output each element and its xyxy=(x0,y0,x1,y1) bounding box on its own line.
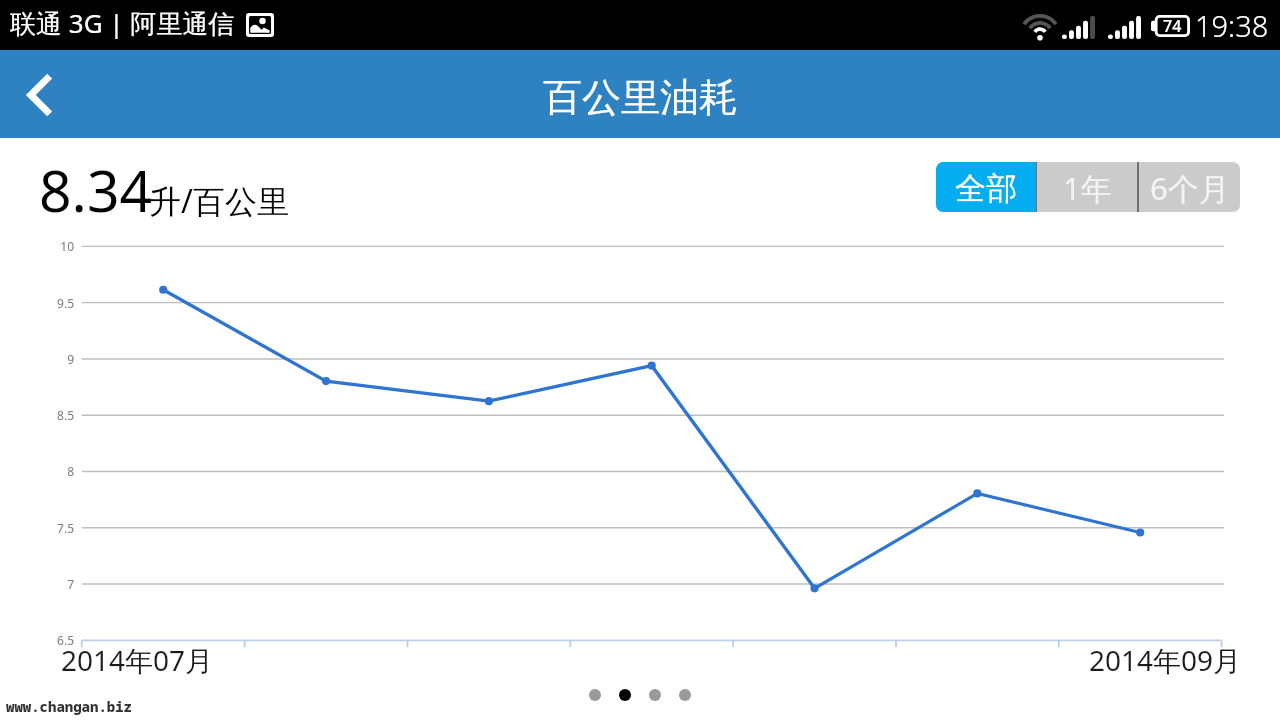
staticText: 6个月 xyxy=(1150,167,1230,209)
staticText: 1年 xyxy=(1063,167,1112,209)
button[interactable]: 6个月 xyxy=(1139,162,1240,212)
staticText: 2014年09月 xyxy=(1089,641,1242,679)
staticText: 7.5 xyxy=(57,520,74,536)
staticText: 联通 3G | 阿里通信 xyxy=(10,5,235,41)
staticText: 19:38 xyxy=(1195,6,1269,45)
staticText: www.changan.biz xyxy=(6,697,132,716)
staticText: 7 xyxy=(67,576,74,592)
button[interactable]: 全部 xyxy=(936,162,1036,212)
staticText: 2014年07月 xyxy=(61,641,214,679)
staticText: 8 xyxy=(67,463,74,479)
staticText: 9 xyxy=(67,351,74,367)
staticText: 10 xyxy=(60,238,74,254)
staticText: 9.5 xyxy=(57,295,74,311)
staticText: 6.5 xyxy=(57,632,74,648)
staticText: 74 xyxy=(1163,15,1182,37)
staticText: 升/百公里 xyxy=(149,179,289,223)
button[interactable]: 1年 xyxy=(1037,162,1137,212)
staticText: 全部 xyxy=(955,169,1017,208)
staticText: 8.5 xyxy=(57,407,74,423)
button[interactable]: Back xyxy=(0,50,76,138)
staticText: 百公里油耗 xyxy=(543,73,738,122)
staticText: 8.34 xyxy=(39,151,153,229)
